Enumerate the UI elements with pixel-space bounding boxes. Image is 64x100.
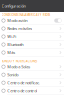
staticText: SONIDO Y NOTIFICACIONES: [2, 59, 37, 63]
staticText: Configuración: [2, 3, 26, 9]
staticText: Bluetooth: [7, 42, 23, 47]
button[interactable]: Bluetooth: [0, 41, 64, 49]
button[interactable]: Más: [0, 49, 64, 57]
button[interactable]: Sonido: [0, 71, 64, 79]
button[interactable]: Centro de notificac.: [0, 79, 64, 87]
button[interactable]: Centro de control: [0, 87, 64, 95]
staticText: Más: [7, 50, 15, 55]
staticText: Modo avión: [7, 18, 27, 23]
button[interactable]: Wi-Fi: [0, 33, 64, 41]
button[interactable]: Redes móviles: [0, 25, 64, 33]
staticText: Modo a Solas: [7, 64, 30, 69]
staticText: Centro de control: [7, 88, 37, 93]
button[interactable]: Modo a Solas: [0, 63, 64, 71]
staticText: Redes móviles: [7, 26, 32, 31]
staticText: Wi-Fi: [7, 34, 16, 39]
staticText: CONEXIONES INALÁMBRICAS Y REDES: [2, 13, 50, 17]
button[interactable]: Modo avión: [0, 17, 64, 25]
staticText: Sonido: [7, 72, 18, 77]
staticText: Centro de notificac.: [7, 80, 40, 85]
